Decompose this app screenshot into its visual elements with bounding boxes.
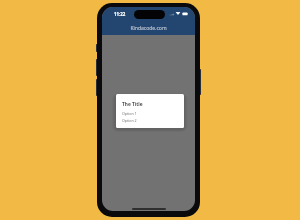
staticText: 11:22 xyxy=(114,11,126,17)
staticText: The Title xyxy=(122,101,143,108)
button[interactable]: Option 1 xyxy=(116,110,184,118)
staticText: Option 1 xyxy=(122,111,137,116)
button[interactable]: Option 2 xyxy=(116,117,184,125)
staticText: Kindacode.com xyxy=(102,25,195,32)
staticText: Option 2 xyxy=(122,118,137,123)
